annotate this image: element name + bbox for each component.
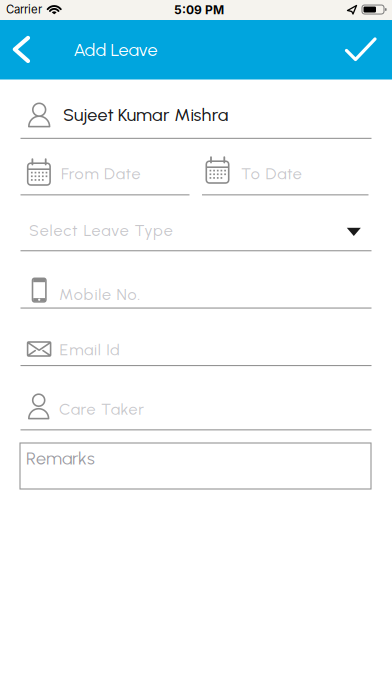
- staticText: Select Leave Type: [29, 221, 173, 240]
- staticText: Sujeet Kumar Mishra: [63, 104, 229, 126]
- staticText: To Date: [241, 164, 302, 183]
- button[interactable]: Save: [340, 20, 392, 79]
- button[interactable]: Email Id: [20, 322, 372, 366]
- button[interactable]: Remarks: [20, 443, 371, 489]
- staticText: Carrier: [6, 2, 42, 16]
- button[interactable]: To Date: [202, 150, 369, 196]
- staticText: Add Leave: [73, 39, 157, 61]
- button[interactable]: From Date: [20, 150, 190, 196]
- button[interactable]: Sujeet Kumar Mishra: [20, 96, 372, 139]
- staticText: Care Taker: [59, 399, 144, 419]
- staticText: 5:09 PM: [174, 2, 224, 17]
- button[interactable]: Mobile No.: [20, 265, 372, 309]
- button[interactable]: Back: [0, 20, 44, 79]
- button[interactable]: Care Taker: [20, 380, 372, 430]
- staticText: Mobile No.: [59, 285, 140, 304]
- staticText: From Date: [61, 164, 140, 183]
- staticText: Email Id: [59, 340, 120, 359]
- button[interactable]: Select Leave Type: [20, 210, 372, 252]
- staticText: Remarks: [26, 447, 95, 469]
